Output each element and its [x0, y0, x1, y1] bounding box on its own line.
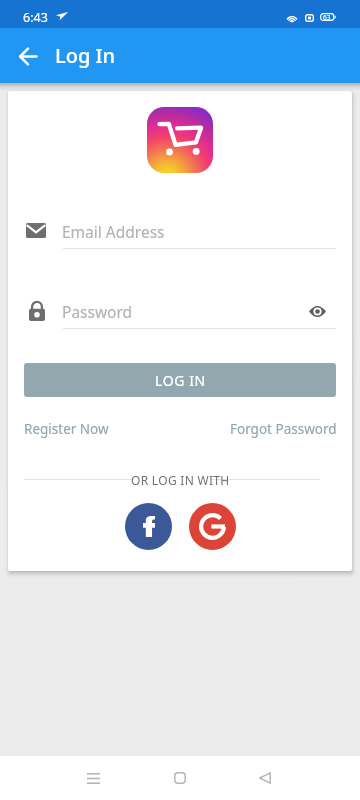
button[interactable]: Log in with Facebook: [125, 503, 172, 550]
staticText: Log In: [55, 42, 116, 69]
button[interactable]: Log in with Google: [189, 503, 236, 550]
staticText: Email Address: [62, 221, 165, 242]
button[interactable]: Home: [156, 756, 204, 800]
staticText: 63: [323, 13, 331, 21]
staticText: Register Now: [24, 420, 109, 438]
staticText: Password: [62, 301, 133, 322]
button[interactable]: Recents: [69, 756, 117, 800]
button[interactable]: Back: [241, 756, 289, 800]
button[interactable]: Forgot Password: [197, 420, 337, 438]
staticText: Forgot Password: [230, 420, 337, 438]
staticText: LOG IN: [155, 371, 206, 390]
staticText: OR LOG IN WITH: [131, 472, 230, 488]
staticText: 6:43: [23, 9, 48, 26]
button[interactable]: Show password: [303, 297, 332, 325]
button[interactable]: LOG IN: [24, 363, 336, 397]
button[interactable]: Back: [8, 36, 48, 76]
button[interactable]: Register Now: [24, 420, 109, 438]
